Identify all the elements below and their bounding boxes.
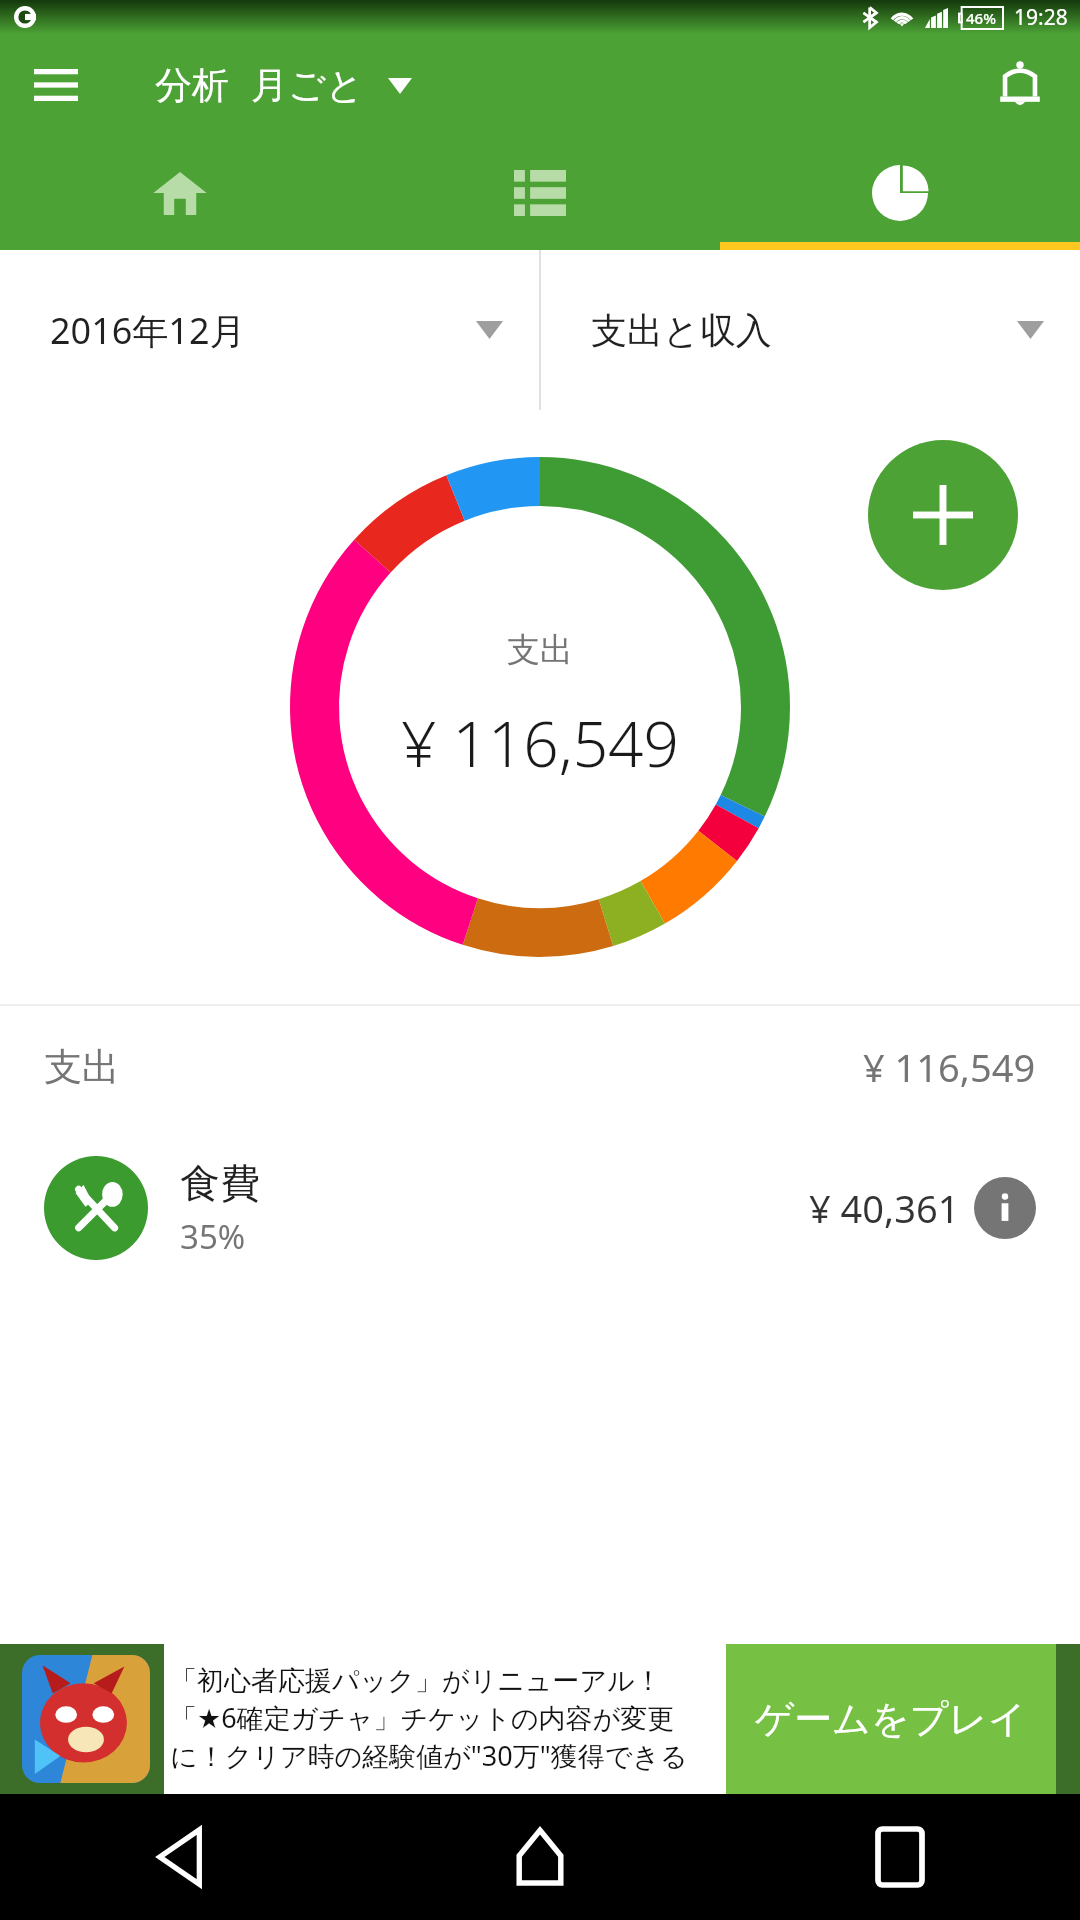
staticText: 分析 [155, 62, 229, 109]
button[interactable]: 支出と収入 [541, 250, 1080, 410]
staticText: 支出 [507, 629, 573, 671]
button[interactable]: 支出 [0, 1006, 1080, 1128]
button[interactable]: 2016年12月 [0, 250, 539, 410]
staticText: 46% [966, 8, 996, 28]
button[interactable]: Home [0, 136, 360, 250]
staticText: ¥ 116,549 [401, 701, 679, 785]
button[interactable]: Back [0, 1794, 360, 1920]
button[interactable]: Notifications [988, 53, 1052, 117]
button[interactable]: 「初心者応援パック」がリニューアル！「★6確定ガチャ」チケットの内容が変更に！ク… [0, 1644, 1080, 1794]
button[interactable]: Details [974, 1177, 1036, 1239]
button[interactable]: Menu [28, 57, 84, 113]
staticText: 「初心者応援パック」がリニューアル！「★6確定ガチャ」チケットの内容が変更に！ク… [170, 1664, 720, 1774]
staticText: 月ごと [251, 62, 364, 109]
staticText: 支出 [44, 1043, 120, 1091]
button[interactable]: 分析 [155, 62, 412, 109]
staticText: 19:28 [1014, 3, 1068, 32]
button[interactable]: Add [868, 440, 1018, 590]
button[interactable]: Recent apps [720, 1794, 1080, 1920]
staticText: 2016年12月 [50, 306, 246, 355]
button[interactable]: List [360, 136, 720, 250]
button[interactable]: Home [360, 1794, 720, 1920]
button[interactable]: Analysis [720, 136, 1080, 250]
staticText: ゲームをプレイ [755, 1695, 1027, 1743]
staticText: ¥ 40,361 [809, 1182, 960, 1234]
button[interactable]: ゲームをプレイ [726, 1644, 1056, 1794]
staticText: ¥ 116,549 [863, 1041, 1036, 1093]
button[interactable]: 食費 [0, 1128, 1080, 1288]
staticText: 食費 [180, 1158, 260, 1208]
staticText: 支出と収入 [591, 308, 772, 353]
staticText: 35% [180, 1214, 246, 1259]
